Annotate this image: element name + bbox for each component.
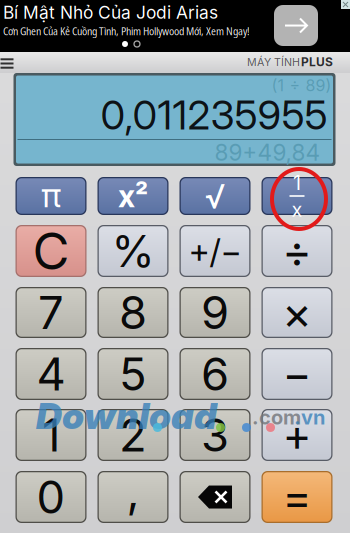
button[interactable]: 2 (97, 409, 168, 461)
button[interactable]: − (261, 348, 332, 400)
staticText: C (32, 220, 69, 282)
staticText: + (282, 408, 311, 462)
staticText: Download (36, 394, 217, 438)
staticText: − (282, 347, 311, 401)
staticText: 8 (119, 285, 147, 340)
staticText: (1 ÷ 89) (271, 76, 331, 95)
staticText: PLUS (301, 55, 333, 69)
staticText: π (41, 175, 61, 215)
staticText: 1 (293, 170, 301, 195)
staticText: +/− (188, 231, 241, 271)
button[interactable]: π (15, 177, 86, 215)
staticText: 0 (36, 470, 65, 524)
staticText: 4 (36, 347, 65, 401)
button[interactable]: 7 (15, 287, 86, 338)
button[interactable]: 1 (15, 409, 86, 461)
staticText: 1 (42, 408, 60, 462)
button[interactable]: √ (179, 177, 250, 215)
button[interactable]: C (15, 225, 86, 277)
button[interactable]: % (97, 225, 168, 277)
button[interactable]: Delete (179, 471, 250, 523)
button[interactable]: 3 (179, 409, 250, 461)
staticText: 6 (201, 347, 229, 401)
staticText: Bí Mật Nhỏ Của Jodi Arias (3, 2, 218, 23)
staticText: % (111, 224, 154, 278)
staticText: x (291, 197, 302, 221)
staticText: 5 (119, 347, 147, 401)
staticText: 7 (38, 285, 64, 340)
staticText: = (282, 470, 311, 524)
button[interactable]: Close ad (341, 0, 350, 9)
staticText: 2 (119, 408, 147, 462)
staticText: √ (205, 176, 225, 216)
staticText: ÷ (282, 224, 312, 278)
button[interactable]: 4 (15, 348, 86, 400)
staticText: x² (118, 177, 148, 214)
button[interactable]: + (261, 409, 332, 461)
staticText: .vn (294, 405, 325, 429)
staticText: × (282, 285, 312, 340)
button[interactable]: 5 (97, 348, 168, 400)
staticText: MÁY TÍNH (247, 55, 300, 68)
staticText: .com (252, 405, 301, 429)
button[interactable]: , (97, 471, 168, 523)
button[interactable]: 0 (15, 471, 86, 523)
button[interactable]: ÷ (261, 225, 332, 277)
staticText: , (126, 464, 139, 518)
button[interactable]: +/− (179, 225, 250, 277)
staticText: Cơn Ghen Của Kẻ Cuồng Tình, Phim Hollywo… (3, 24, 250, 38)
button[interactable]: 9 (179, 287, 250, 338)
button[interactable]: = (261, 471, 332, 523)
button[interactable]: x² (97, 177, 168, 215)
button[interactable]: × (261, 287, 332, 338)
staticText: 0,011235955 (100, 91, 327, 139)
staticText: 3 (201, 408, 229, 462)
button[interactable]: Next ad (274, 5, 318, 46)
staticText: 89+49,84 (214, 139, 320, 166)
button[interactable]: One divided by x (261, 177, 332, 215)
button[interactable]: 8 (97, 287, 168, 338)
button[interactable]: 6 (179, 348, 250, 400)
button[interactable]: Menu (0, 58, 14, 69)
staticText: 9 (201, 285, 229, 340)
